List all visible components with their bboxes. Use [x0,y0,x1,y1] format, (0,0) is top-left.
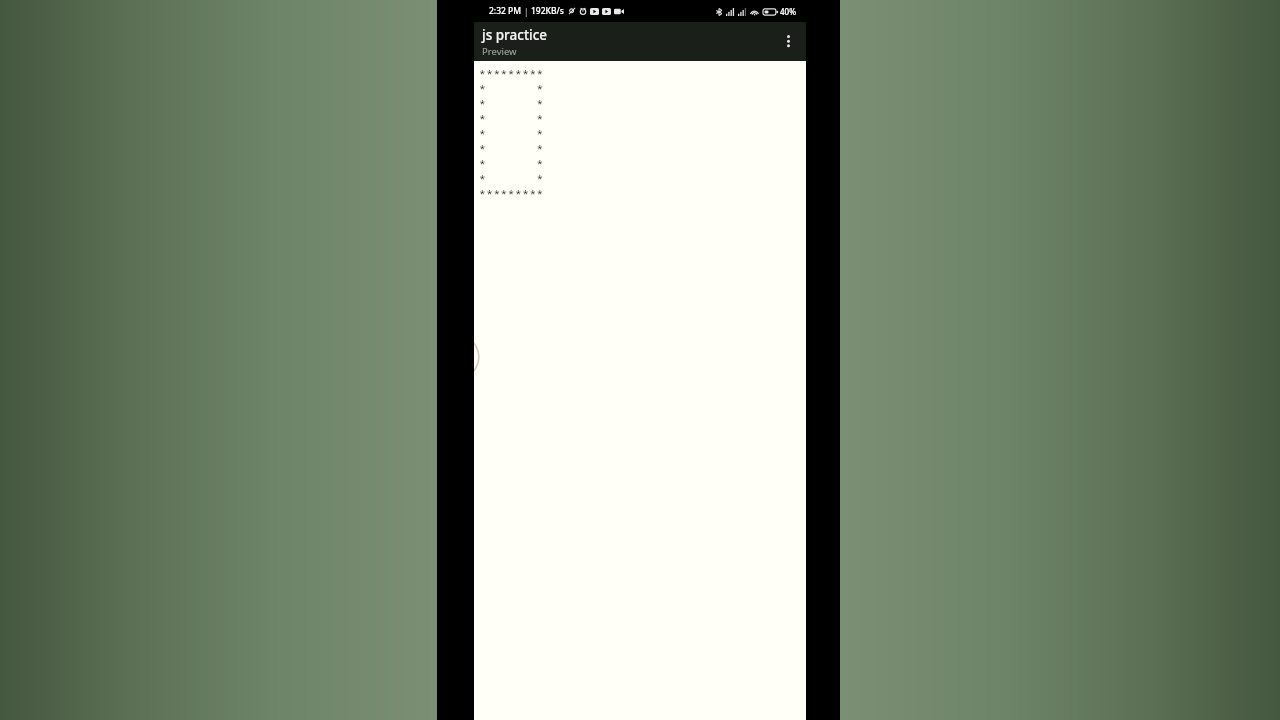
staticText: * * [479,171,544,186]
staticText: * * [479,126,544,141]
staticText: * * [479,111,544,126]
button[interactable]: More options [770,24,806,60]
staticText: * * [479,81,544,96]
staticText: Preview [482,45,517,58]
staticText: * * [479,156,544,171]
staticText: | [524,6,529,17]
staticText: 2:32 PM [489,5,522,17]
staticText: ********* [479,66,544,81]
staticText: 192KB/s [531,5,564,17]
staticText: 40% [780,6,796,17]
staticText: * * [479,141,544,156]
staticText: js practice [482,26,548,44]
staticText: ********* [479,186,544,201]
staticText: * * [479,96,544,111]
